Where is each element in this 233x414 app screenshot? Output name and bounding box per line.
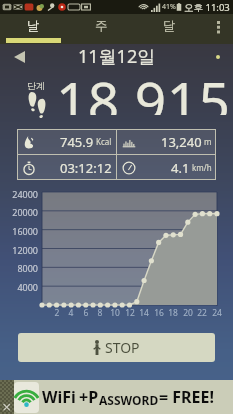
staticText: 14 — [136, 307, 152, 319]
staticText: 20 — [180, 307, 196, 319]
button[interactable]: 13,240 — [117, 129, 216, 154]
staticText: 11월12일 — [78, 44, 156, 69]
staticText: +P — [79, 386, 99, 408]
staticText: 단계 — [27, 80, 45, 91]
staticText: m — [204, 136, 212, 147]
staticText: 2 — [49, 307, 65, 319]
staticText: 20000 — [0, 206, 38, 218]
button[interactable]: STOP — [18, 333, 215, 362]
staticText: 오후 11:03 — [184, 1, 230, 14]
staticText: 13,240 — [161, 133, 202, 151]
staticText: 6 — [78, 307, 94, 319]
staticText: 03:12:12 — [60, 159, 112, 177]
staticText: 4000 — [0, 281, 38, 293]
staticText: 41% — [162, 2, 176, 12]
staticText: km/h — [192, 162, 212, 173]
staticText: 4 — [63, 307, 79, 319]
button[interactable]: Close ad — [0, 380, 233, 414]
staticText: WiFi — [42, 386, 76, 408]
staticText: 4.1 — [171, 159, 190, 177]
staticText: 18,915 — [56, 63, 231, 115]
staticText: 18 — [165, 307, 181, 319]
button[interactable]: More options — [203, 14, 233, 44]
staticText: 8000 — [0, 262, 38, 274]
staticText: 주 — [95, 18, 108, 34]
button[interactable]: Previous day — [9, 47, 29, 67]
staticText: Kcal — [96, 136, 112, 147]
button[interactable]: Next day — [211, 50, 225, 64]
staticText: 745.9 — [60, 133, 94, 151]
staticText: STOP — [105, 338, 140, 357]
staticText: 날 — [27, 18, 40, 34]
staticText: 12000 — [0, 244, 38, 256]
staticText: 10 — [107, 307, 123, 319]
staticText: 24000 — [0, 188, 38, 200]
button[interactable]: 날 — [0, 14, 67, 44]
staticText: 22 — [194, 307, 210, 319]
button[interactable]: 4.1 — [117, 155, 216, 180]
staticText: 24 — [209, 307, 225, 319]
staticText: ASSWORD — [99, 392, 159, 408]
button[interactable]: Close ad — [0, 380, 14, 414]
staticText: 16 — [151, 307, 167, 319]
button[interactable]: 주 — [67, 14, 135, 44]
button[interactable]: 745.9 — [17, 129, 116, 154]
staticText: 16000 — [0, 225, 38, 237]
button[interactable]: 03:12:12 — [17, 155, 116, 180]
staticText: = FREE! — [159, 386, 215, 408]
staticText: 12 — [122, 307, 138, 319]
staticText: 달 — [163, 18, 176, 34]
button[interactable]: 달 — [135, 14, 203, 44]
staticText: 8 — [92, 307, 108, 319]
